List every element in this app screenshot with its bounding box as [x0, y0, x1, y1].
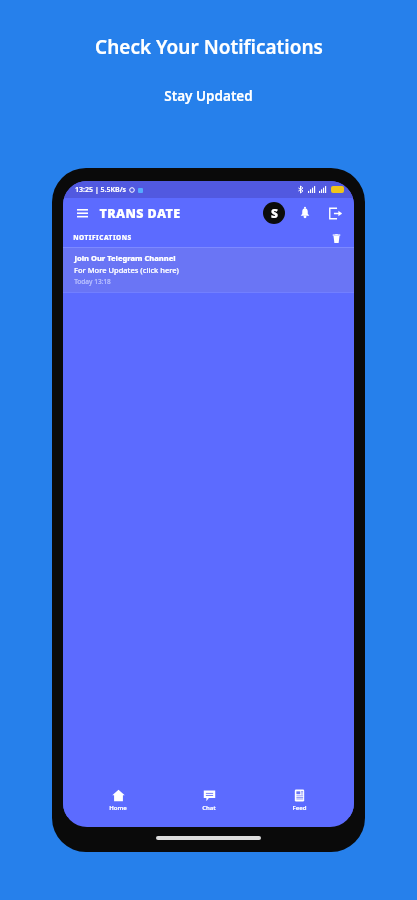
- staticText: 13:25 | 5.5KB/s: [75, 185, 126, 195]
- staticText: For More Updates (click here): [74, 265, 179, 275]
- staticText: S: [271, 205, 278, 221]
- button[interactable]: Notifications: [295, 203, 315, 223]
- button[interactable]: Logout: [325, 203, 345, 223]
- staticText: Check Your Notifications: [95, 34, 323, 60]
- staticText: Today 13:18: [74, 277, 111, 286]
- button[interactable]: Chat: [174, 786, 244, 815]
- staticText: Home: [109, 804, 127, 812]
- button[interactable]: Home: [83, 786, 153, 815]
- staticText: Stay Updated: [164, 87, 253, 105]
- staticText: Feed: [292, 804, 307, 812]
- button[interactable]: Profile: [263, 202, 285, 224]
- button[interactable]: Open navigation menu: [72, 203, 92, 223]
- staticText: NOTIFICATIONS: [73, 233, 132, 242]
- button[interactable]: Delete all notifications: [328, 230, 344, 246]
- button[interactable]: Join Our Telegram Channel: [63, 248, 354, 292]
- staticText: TRANS DATE: [99, 205, 181, 222]
- staticText: Chat: [202, 804, 216, 812]
- button[interactable]: Feed: [264, 786, 334, 815]
- staticText: Join Our Telegram Channel: [74, 253, 176, 263]
